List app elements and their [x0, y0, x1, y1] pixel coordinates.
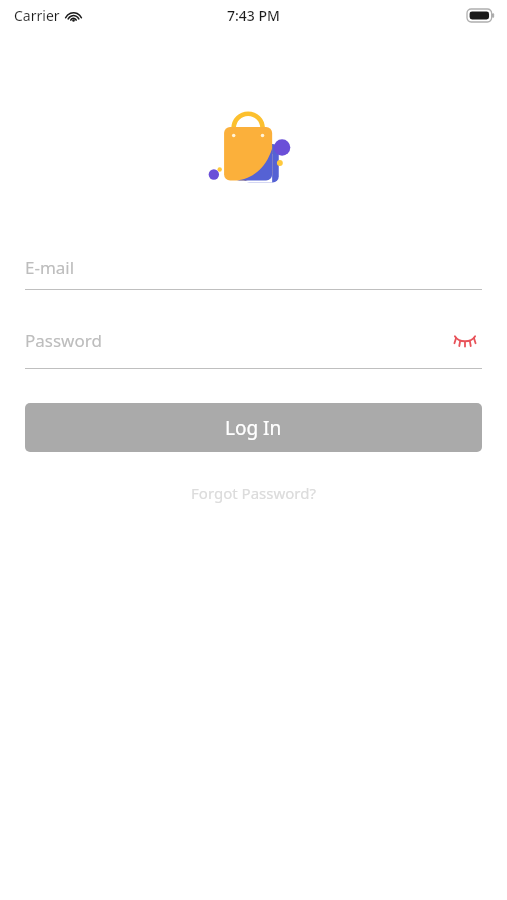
button[interactable]: Password — [25, 317, 482, 369]
staticText: E-mail — [25, 256, 75, 279]
staticText: Carrier — [14, 6, 60, 25]
button[interactable]: Show password — [448, 325, 482, 353]
button[interactable]: Log In — [25, 403, 482, 452]
staticText: 7:43 PM — [227, 6, 280, 25]
button[interactable]: Forgot Password? — [0, 478, 507, 508]
staticText: Log In — [225, 415, 282, 441]
button[interactable]: E-mail — [25, 245, 482, 290]
staticText: Password — [25, 329, 102, 352]
staticText: Forgot Password? — [191, 483, 316, 503]
